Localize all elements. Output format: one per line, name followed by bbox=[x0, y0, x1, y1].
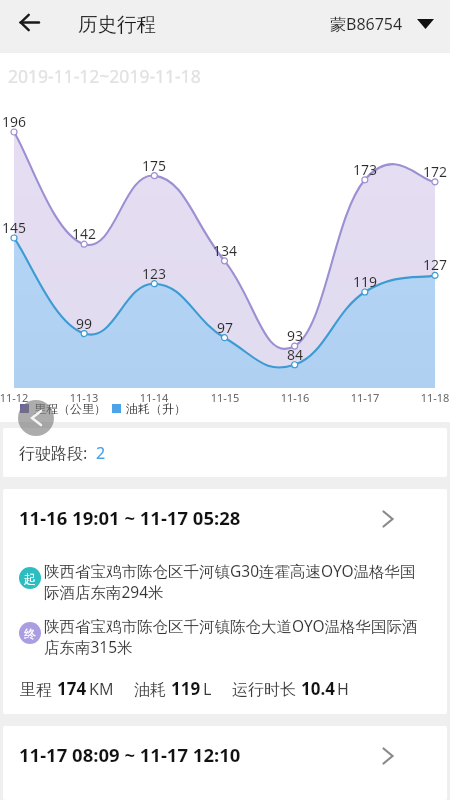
staticText: 里程 bbox=[20, 680, 52, 700]
staticText: 174 bbox=[57, 677, 87, 700]
staticText: L bbox=[203, 678, 212, 700]
button[interactable]: 蒙B86754 bbox=[330, 13, 448, 35]
staticText: 119 bbox=[345, 272, 385, 291]
staticText: 运行时长 bbox=[232, 680, 296, 700]
staticText: 油耗 bbox=[134, 680, 166, 700]
staticText: 10.4 bbox=[301, 677, 335, 700]
staticText: 84 bbox=[275, 345, 315, 364]
staticText: 11-12 bbox=[0, 390, 36, 405]
staticText: 142 bbox=[64, 224, 104, 243]
staticText: 蒙B86754 bbox=[330, 13, 403, 35]
staticText: 11-17 bbox=[343, 390, 387, 405]
staticText: 陕西省宝鸡市陈仓区千河镇陈仓大道OYO温格华国际酒店东南315米 bbox=[44, 615, 422, 657]
staticText: 123 bbox=[134, 264, 174, 283]
staticText: 11-13 bbox=[62, 390, 106, 405]
staticText: 2019-11-12~2019-11-18 bbox=[8, 64, 201, 88]
staticText: 11-18 bbox=[413, 390, 450, 405]
staticText: 173 bbox=[345, 160, 385, 179]
staticText: 145 bbox=[0, 218, 34, 237]
staticText: KM bbox=[89, 678, 114, 700]
button[interactable]: 行驶路段: bbox=[3, 428, 447, 477]
staticText: 油耗（升） bbox=[126, 401, 186, 416]
staticText: 起 bbox=[24, 571, 36, 586]
staticText: 196 bbox=[0, 112, 34, 131]
button[interactable]: Back bbox=[18, 400, 54, 436]
staticText: 11-15 bbox=[203, 390, 247, 405]
staticText: 历史行程 bbox=[78, 12, 156, 37]
button[interactable]: 11-16 19:01 ~ 11-17 05:28 bbox=[3, 489, 447, 714]
staticText: 99 bbox=[64, 314, 104, 333]
staticText: 陕西省宝鸡市陈仓区千河镇G30连霍高速OYO温格华国际酒店东南294米 bbox=[44, 560, 422, 602]
staticText: 行驶路段: bbox=[19, 442, 88, 464]
staticText: 119 bbox=[171, 677, 201, 700]
staticText: 2 bbox=[96, 442, 106, 464]
staticText: 172 bbox=[415, 162, 450, 181]
staticText: 93 bbox=[275, 326, 315, 345]
staticText: 134 bbox=[205, 241, 245, 260]
staticText: 175 bbox=[134, 156, 174, 175]
staticText: 11-16 19:01 ~ 11-17 05:28 bbox=[19, 505, 241, 530]
button[interactable]: Back bbox=[5, 0, 53, 45]
staticText: 11-14 bbox=[132, 390, 176, 405]
staticText: 127 bbox=[415, 255, 450, 274]
staticText: H bbox=[337, 678, 349, 700]
staticText: 11-16 bbox=[273, 390, 317, 405]
staticText: 11-17 08:09 ~ 11-17 12:10 bbox=[19, 742, 241, 767]
staticText: 里程（公里） bbox=[34, 401, 106, 416]
staticText: 终 bbox=[24, 626, 36, 641]
button[interactable]: 11-17 08:09 ~ 11-17 12:10 bbox=[3, 726, 447, 800]
staticText: 97 bbox=[205, 318, 245, 337]
